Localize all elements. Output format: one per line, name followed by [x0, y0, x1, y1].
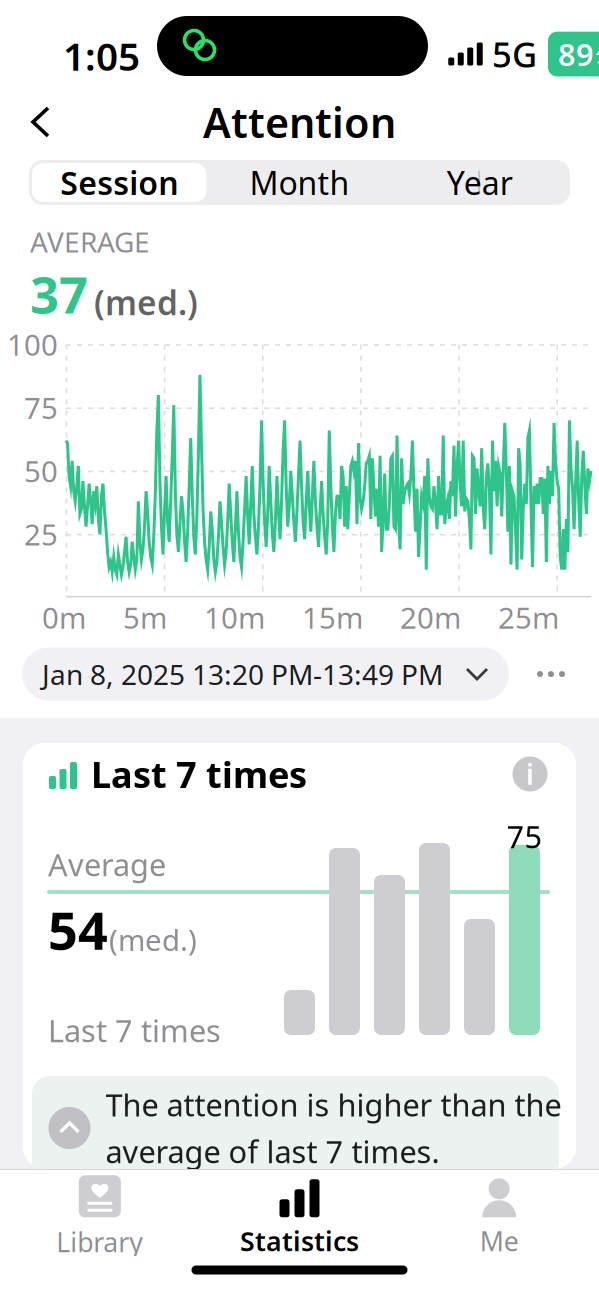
staticText: 5m	[123, 598, 167, 637]
staticText: Jan 8, 2025 13:20 PM-13:49 PM	[42, 655, 443, 693]
staticText: 37	[30, 260, 88, 327]
staticText: 20m	[400, 598, 461, 637]
staticText: 0m	[42, 598, 86, 637]
staticText: Attention	[203, 95, 396, 149]
button[interactable]: Library	[0, 1166, 200, 1260]
staticText: 100	[7, 325, 58, 364]
staticText: 25m	[498, 598, 559, 637]
staticText: (med.)	[109, 920, 197, 959]
button[interactable]: Jan 8, 2025 13:20 PM-13:49 PM	[22, 647, 509, 701]
staticText: (med.)	[94, 280, 198, 324]
button[interactable]: Back	[16, 95, 68, 149]
staticText: 10m	[204, 598, 265, 637]
staticText: Statistics	[240, 1223, 359, 1259]
button[interactable]: Year	[390, 160, 570, 205]
staticText: average of last 7 times.	[105, 1131, 439, 1172]
button[interactable]: Info	[506, 750, 554, 798]
button[interactable]: Session	[29, 160, 209, 205]
button[interactable]: More options	[523, 653, 579, 695]
staticText: AVERAGE	[30, 223, 150, 260]
button[interactable]: Me	[399, 1167, 599, 1259]
staticText: Average	[48, 844, 166, 885]
staticText: Library	[56, 1224, 143, 1260]
staticText: Year	[447, 161, 513, 204]
staticText: Me	[480, 1223, 519, 1259]
staticText: 75	[24, 388, 58, 427]
staticText: 89	[558, 34, 594, 74]
staticText: Session	[60, 161, 178, 204]
button[interactable]: Collapse	[41, 1100, 97, 1156]
staticText: 54	[48, 895, 108, 964]
staticText: Month	[249, 161, 349, 204]
staticText: 75	[506, 816, 542, 857]
button[interactable]: Statistics	[200, 1167, 399, 1259]
staticText: The attention is higher than the	[105, 1084, 561, 1125]
staticText: Last 7 times	[48, 1010, 221, 1051]
button[interactable]: Month	[209, 160, 390, 205]
staticText: i	[526, 755, 534, 793]
staticText: 15m	[302, 598, 363, 637]
staticText: 25	[24, 515, 58, 554]
staticText: 50	[24, 451, 58, 490]
staticText: 1:05	[63, 30, 140, 81]
staticText: 5G	[492, 31, 537, 77]
staticText: Last 7 times	[91, 750, 307, 798]
